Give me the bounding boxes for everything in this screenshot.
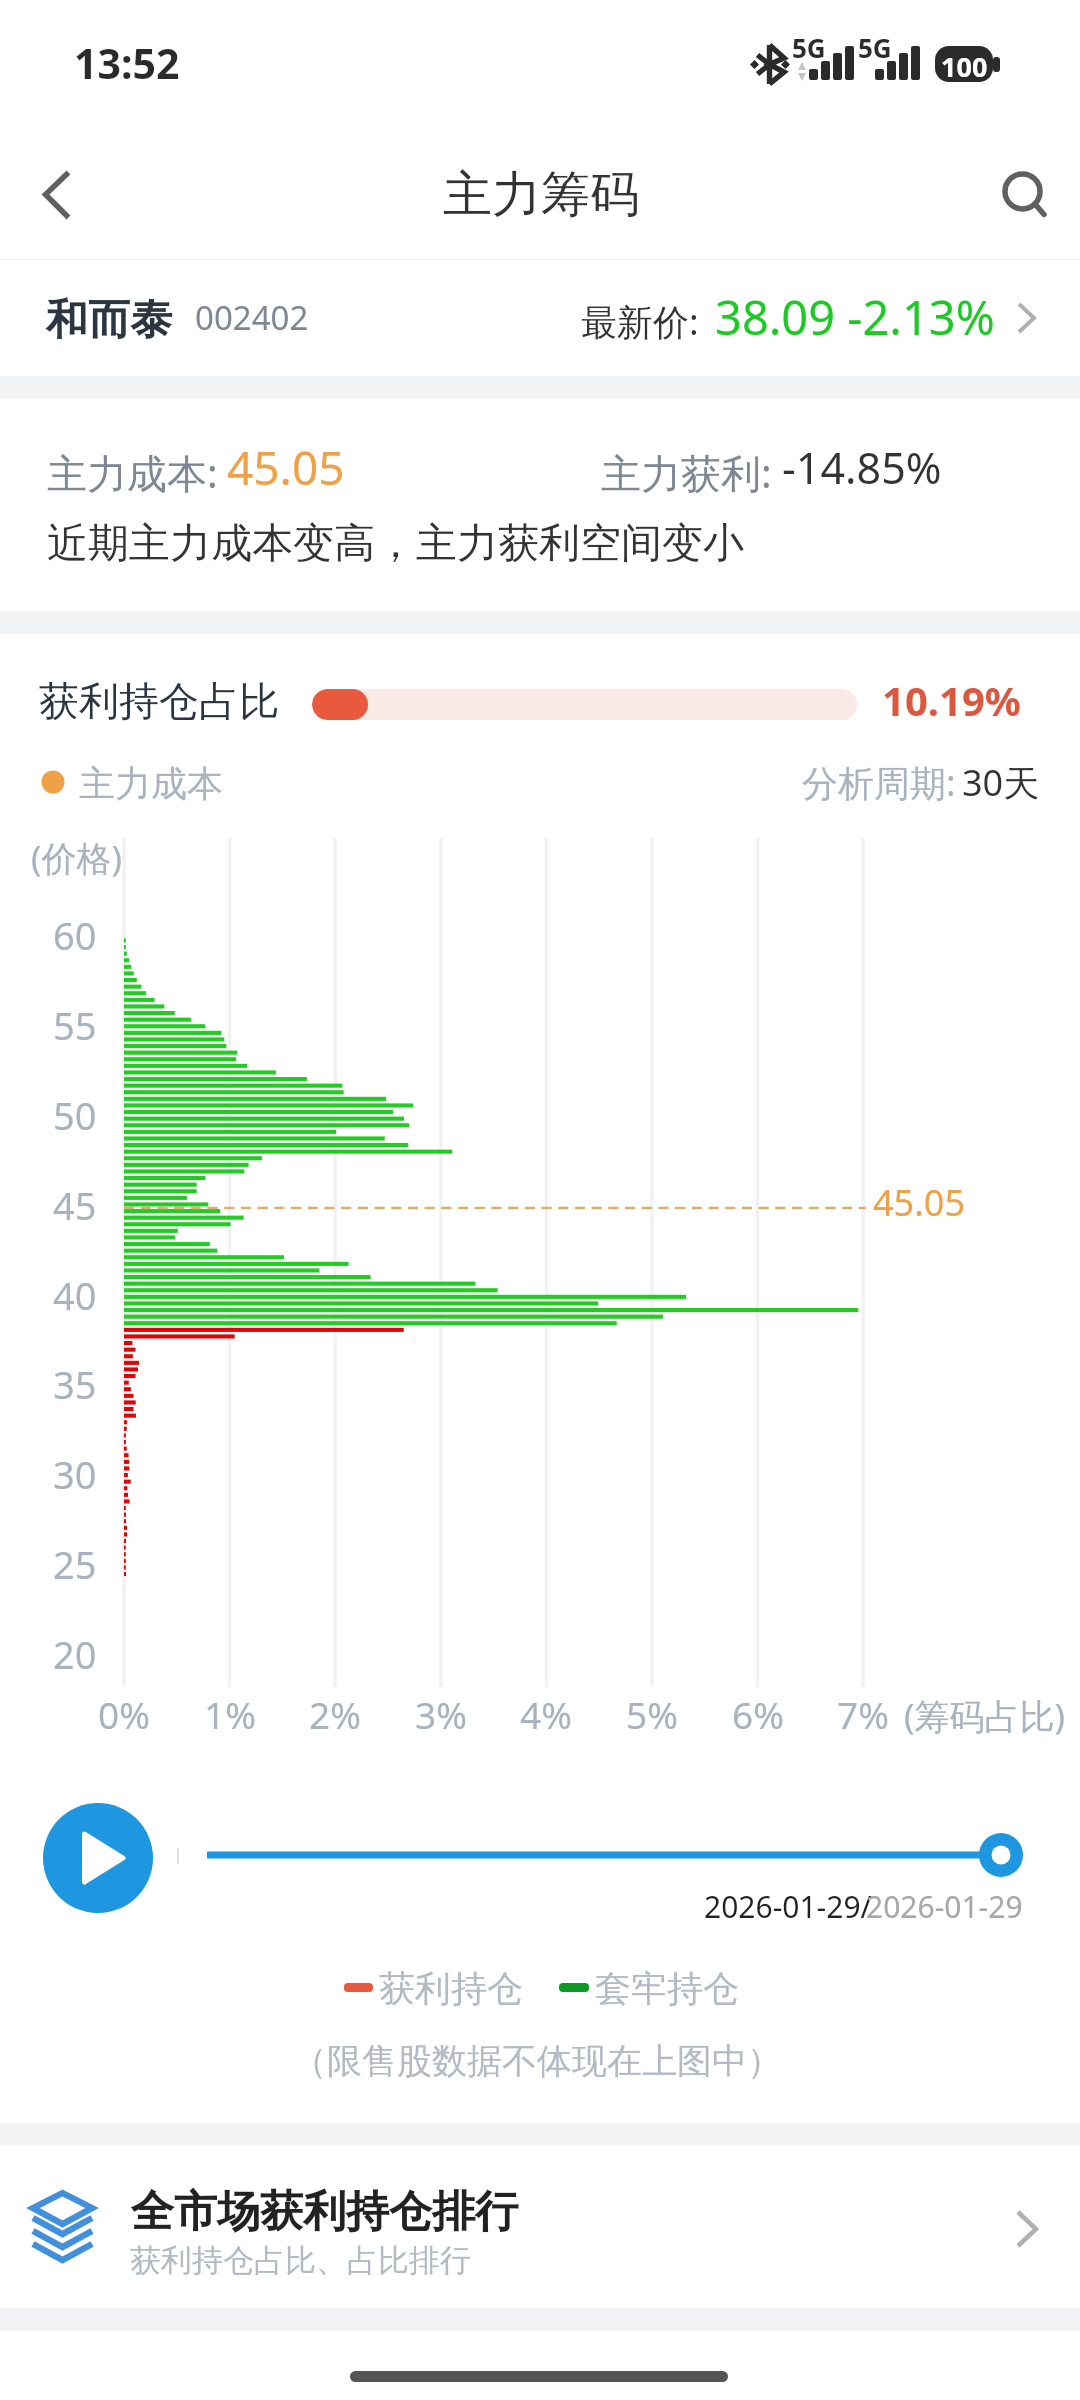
button[interactable]: Play bbox=[43, 1803, 153, 1913]
staticText: 主力成本: bbox=[47, 445, 218, 500]
staticText: 60 bbox=[53, 909, 97, 961]
staticText: 10.19% bbox=[882, 673, 1021, 727]
staticText: 主力筹码 bbox=[443, 164, 639, 226]
staticText: 2% bbox=[309, 1689, 361, 1739]
staticText: 套牢持仓 bbox=[595, 1966, 739, 2011]
staticText: 近期主力成本变高，主力获利空间变小 bbox=[47, 518, 744, 570]
button[interactable] bbox=[0, 260, 1080, 376]
staticText: 45.05 bbox=[227, 436, 345, 499]
staticText: 0% bbox=[98, 1689, 150, 1739]
staticText: 30天 bbox=[962, 758, 1040, 807]
staticText: 002402 bbox=[195, 295, 309, 340]
staticText: 5G bbox=[858, 30, 892, 65]
staticText: 13:52 bbox=[74, 35, 180, 91]
staticText: (价格) bbox=[31, 834, 123, 882]
staticText: 2026-01-29 bbox=[866, 1886, 1023, 1927]
staticText: -14.85% bbox=[782, 438, 942, 497]
staticText: 3% bbox=[415, 1689, 467, 1739]
staticText: 7% bbox=[837, 1689, 889, 1739]
staticText: 45 bbox=[53, 1179, 97, 1231]
staticText: 分析周期: bbox=[802, 758, 956, 807]
staticText: 1% bbox=[204, 1689, 256, 1739]
staticText: 全市场获利持仓排行 bbox=[131, 2185, 518, 2239]
staticText: 50 bbox=[53, 1089, 97, 1141]
staticText: 获利持仓占比 bbox=[39, 676, 279, 726]
staticText: 和而泰 bbox=[46, 294, 172, 347]
button[interactable] bbox=[0, 2145, 1080, 2308]
staticText: 100 bbox=[941, 48, 988, 85]
staticText: 主力获利: bbox=[601, 445, 772, 500]
button[interactable]: Back bbox=[10, 149, 100, 239]
button[interactable]: Search bbox=[978, 146, 1068, 236]
staticText: 20 bbox=[53, 1628, 97, 1680]
staticText: 6% bbox=[732, 1689, 784, 1739]
staticText: 获利持仓占比、占比排行 bbox=[130, 2241, 471, 2280]
staticText: (筹码占比) bbox=[904, 1692, 1066, 1740]
staticText: 40 bbox=[53, 1269, 97, 1321]
staticText: 30 bbox=[53, 1448, 97, 1500]
staticText: 25 bbox=[53, 1538, 97, 1590]
staticText: 55 bbox=[53, 999, 97, 1051]
staticText: 最新价: bbox=[581, 297, 699, 346]
staticText: 主力成本 bbox=[79, 761, 223, 806]
staticText: 4% bbox=[520, 1689, 572, 1739]
staticText: 5% bbox=[626, 1689, 678, 1739]
staticText: 35 bbox=[53, 1358, 97, 1410]
staticText: 38.09 -2.13% bbox=[715, 285, 995, 349]
staticText: 45.05 bbox=[873, 1178, 966, 1227]
staticText: 2026-01-29/ bbox=[704, 1886, 872, 1927]
staticText: 获利持仓 bbox=[379, 1966, 523, 2011]
staticText: 5G bbox=[792, 30, 826, 65]
staticText: （限售股数据不体现在上图中） bbox=[292, 2039, 782, 2083]
